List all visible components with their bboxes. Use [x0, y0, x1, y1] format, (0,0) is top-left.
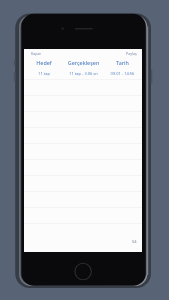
staticText: Tarih	[103, 59, 142, 66]
staticText: Paylaş	[126, 51, 137, 56]
staticText: Kapat	[31, 51, 41, 56]
staticText: Hedef	[24, 59, 64, 66]
button[interactable]: Paylaş	[124, 50, 139, 57]
staticText: Gerçekleşen	[64, 59, 103, 66]
button[interactable]: Kapat	[29, 50, 43, 57]
staticText: 11 tap - 3.06 sn	[64, 71, 103, 76]
button[interactable]: 11 tap	[24, 68, 142, 79]
staticText: 54	[132, 239, 137, 244]
staticText: 11 tap	[24, 71, 64, 76]
staticText: 09.01 - 14:56	[103, 71, 142, 76]
